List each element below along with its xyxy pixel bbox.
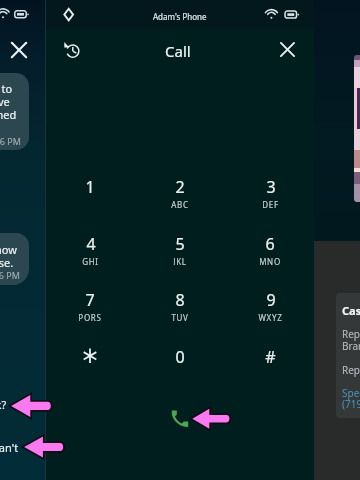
button[interactable]: Call history bbox=[63, 41, 80, 58]
staticText: 5 bbox=[175, 233, 185, 255]
staticText: (719) bbox=[342, 397, 360, 411]
button[interactable]: 1 bbox=[62, 176, 118, 208]
button[interactable]: now bbox=[0, 233, 29, 285]
staticText: 2 bbox=[175, 176, 185, 198]
button[interactable]: 8 bbox=[152, 289, 208, 321]
staticText: Call bbox=[165, 41, 191, 61]
staticText: Report bbox=[342, 327, 360, 341]
button[interactable]: # bbox=[242, 346, 298, 378]
staticText: 8 bbox=[175, 289, 185, 311]
staticText: 4 bbox=[86, 233, 96, 255]
staticText: Ok? bbox=[0, 397, 7, 412]
staticText: Report bbox=[342, 363, 360, 377]
button[interactable]: 6 bbox=[242, 233, 298, 265]
button[interactable]: Close dialer bbox=[280, 42, 295, 57]
staticText: 1 bbox=[85, 176, 95, 198]
staticText: finished bbox=[0, 107, 17, 122]
staticText: want to bbox=[0, 81, 13, 96]
staticText: 0 bbox=[175, 346, 185, 368]
button[interactable]: Close conversation bbox=[11, 42, 27, 58]
button[interactable]: 2 bbox=[152, 176, 208, 208]
staticText: now bbox=[0, 242, 17, 257]
staticText: Cascade bbox=[342, 303, 360, 318]
staticText: Branch bbox=[342, 339, 360, 353]
staticText: DEF bbox=[262, 199, 279, 208]
staticText: 6 bbox=[265, 233, 275, 255]
staticText: Adam's Phone bbox=[153, 11, 207, 22]
staticText: TUV bbox=[171, 312, 189, 321]
button[interactable] bbox=[336, 293, 360, 418]
button[interactable]: 0 bbox=[152, 346, 208, 378]
button[interactable]: 4 bbox=[62, 233, 118, 265]
button[interactable]: want to bbox=[0, 73, 29, 150]
staticText: JKL bbox=[173, 256, 187, 265]
staticText: MNO bbox=[259, 256, 281, 265]
staticText: Special bbox=[342, 386, 360, 400]
button[interactable]: 9 bbox=[242, 289, 298, 321]
staticText: PQRS bbox=[78, 312, 102, 321]
staticText: 7 bbox=[85, 289, 95, 311]
staticText: GHI bbox=[82, 256, 99, 265]
staticText: 3 bbox=[266, 176, 276, 198]
staticText: ABC bbox=[171, 199, 189, 208]
button[interactable]: 7 bbox=[62, 289, 118, 321]
staticText: use. bbox=[0, 255, 14, 270]
staticText: WXYZ bbox=[258, 312, 283, 321]
button[interactable]: Star bbox=[62, 340, 118, 372]
staticText: have bbox=[0, 94, 10, 109]
staticText: 3:46 PM bbox=[0, 135, 21, 147]
staticText: 9 bbox=[266, 289, 276, 311]
button[interactable]: 5 bbox=[152, 233, 208, 265]
staticText: 3:46 PM bbox=[0, 269, 20, 281]
staticText: # bbox=[265, 346, 276, 368]
button[interactable]: Call bbox=[170, 409, 189, 428]
button[interactable]: 3 bbox=[242, 176, 298, 208]
staticText: I can't bbox=[0, 440, 19, 455]
